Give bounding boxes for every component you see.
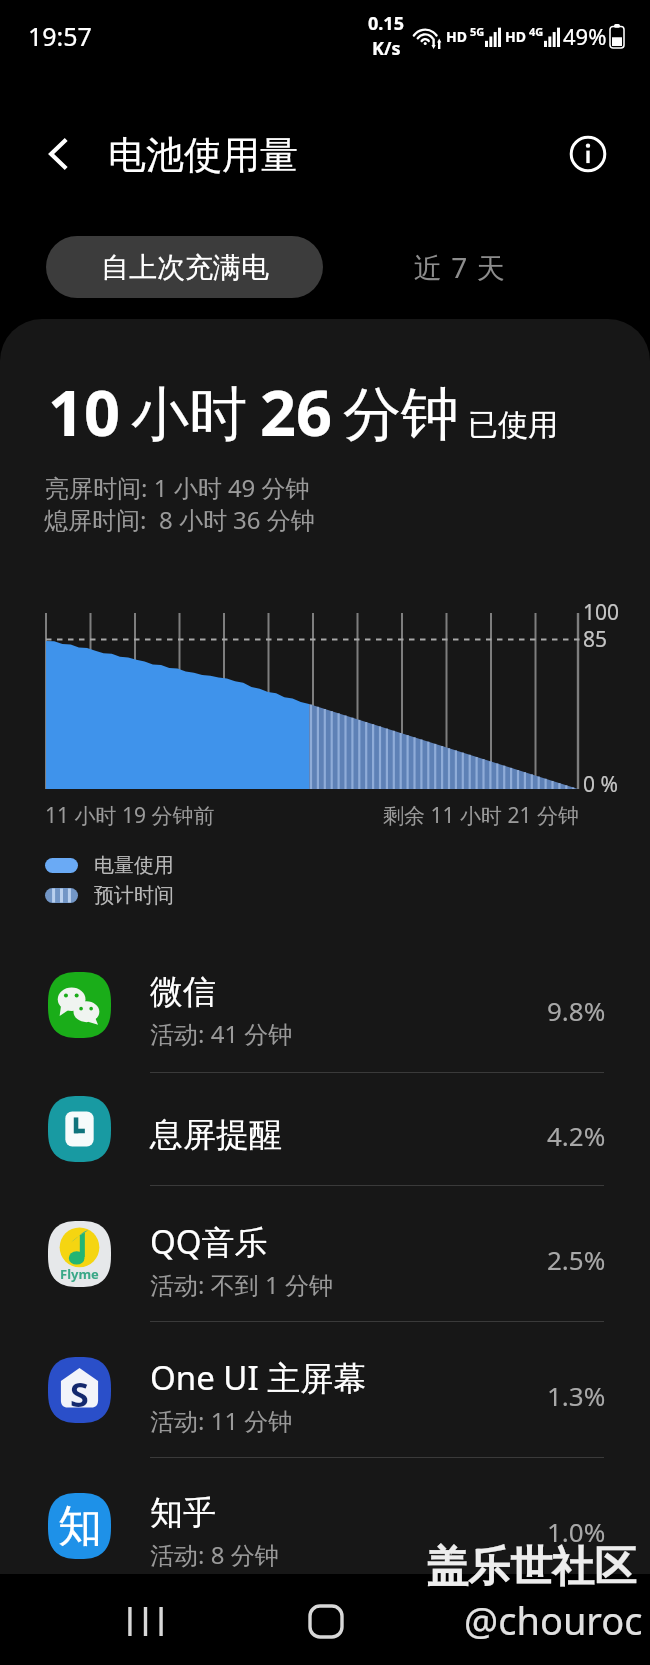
staticText: 微信: [150, 971, 216, 1013]
staticText: QQ音乐: [150, 1219, 268, 1264]
staticText: @chouroc: [464, 1594, 643, 1646]
staticText: 10: [48, 369, 121, 455]
staticText: 9.8%: [547, 993, 606, 1028]
staticText: 活动: 不到 1 分钟: [150, 1268, 333, 1301]
button[interactable]: Flyme: [0, 1186, 650, 1321]
staticText: 熄屏时间: 8 小时 36 分钟: [44, 503, 315, 536]
staticText: 4G: [529, 24, 544, 39]
staticText: HD: [505, 27, 526, 46]
button[interactable]: Back: [33, 128, 85, 180]
button[interactable]: 息屏提醒: [0, 1073, 650, 1185]
staticText: 11 小时 19 分钟前: [45, 801, 215, 830]
staticText: Flyme: [60, 1265, 99, 1283]
staticText: 19:57: [28, 19, 92, 53]
staticText: 4.2%: [547, 1118, 606, 1153]
staticText: HD: [446, 27, 467, 46]
staticText: 小时: [131, 378, 247, 451]
button[interactable]: 微信: [0, 937, 650, 1072]
staticText: 已使用: [468, 406, 558, 444]
button[interactable]: 自上次充满电: [46, 236, 323, 298]
staticText: One UI 主屏幕: [150, 1355, 367, 1400]
staticText: S: [70, 1371, 89, 1417]
button[interactable]: 近 7 天: [341, 236, 579, 298]
staticText: 1.3%: [547, 1378, 606, 1413]
staticText: 0.15: [368, 11, 404, 36]
staticText: 100: [583, 598, 620, 627]
staticText: 知: [58, 1499, 102, 1554]
staticText: 1.0%: [547, 1514, 606, 1549]
button[interactable]: S: [0, 1322, 650, 1457]
staticText: 剩余 11 小时 21 分钟: [383, 801, 579, 830]
staticText: 活动: 11 分钟: [150, 1404, 293, 1437]
staticText: 盖乐世社区: [426, 1541, 636, 1594]
staticText: 活动: 41 分钟: [150, 1017, 293, 1050]
staticText: 5G: [470, 24, 485, 39]
staticText: 26: [260, 369, 333, 455]
button[interactable]: Back: [470, 1588, 536, 1654]
staticText: 近 7 天: [414, 248, 506, 286]
staticText: 知乎: [150, 1492, 216, 1534]
staticText: 分钟: [343, 378, 459, 451]
staticText: 2.5%: [547, 1242, 606, 1277]
staticText: 电池使用量: [108, 131, 298, 179]
staticText: 49%: [563, 21, 607, 51]
button[interactable]: Information: [562, 128, 614, 180]
staticText: 0 %: [583, 770, 618, 799]
staticText: K/s: [372, 36, 401, 61]
staticText: 85: [583, 625, 608, 654]
staticText: 预计时间: [94, 883, 174, 908]
staticText: 息屏提醒: [150, 1114, 282, 1156]
button[interactable]: Home: [293, 1588, 359, 1654]
staticText: 自上次充满电: [101, 250, 269, 285]
staticText: 电量使用: [94, 853, 174, 878]
button[interactable]: 知: [0, 1458, 650, 1593]
staticText: 活动: 8 分钟: [150, 1538, 279, 1571]
button[interactable]: Recent apps: [112, 1588, 178, 1654]
staticText: 亮屏时间: 1 小时 49 分钟: [45, 471, 310, 504]
